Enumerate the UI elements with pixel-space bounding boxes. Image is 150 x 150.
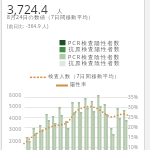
staticText: 5000 (9, 103, 22, 109)
staticText: 人 (57, 8, 63, 15)
staticText: 25% (128, 114, 139, 120)
staticText: 10% (128, 144, 139, 150)
staticText: 検査人数（7日間移動平均） (48, 73, 120, 80)
staticText: PCR検査陽性者数 (68, 39, 121, 47)
staticText: (前日比: -364.9 人) (7, 23, 49, 29)
staticText: 6000 (9, 92, 22, 98)
staticText: 抗原検査陰性者数 (68, 60, 120, 67)
staticText: 15% (128, 134, 139, 140)
staticText: 20% (128, 124, 139, 130)
staticText: 2000 (9, 138, 22, 144)
button[interactable] (2, 0, 144, 150)
staticText: 3,724.4 (7, 1, 48, 17)
staticText: 30% (128, 104, 139, 110)
staticText: 陽性率 (70, 81, 87, 87)
staticText: 3000 (9, 126, 22, 132)
staticText: 35% (128, 94, 139, 100)
staticText: 4000 (9, 115, 22, 121)
staticText: 8月24日の数値（7日間移動平均） (7, 14, 94, 21)
staticText: PCR検査陰性者数 (68, 53, 121, 61)
staticText: 抗原検査陽性者数 (68, 46, 120, 53)
